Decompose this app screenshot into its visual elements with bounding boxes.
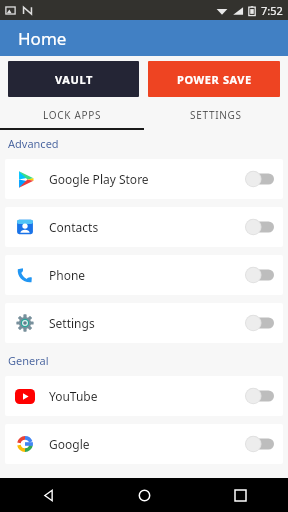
staticText: Settings <box>49 315 244 331</box>
staticText: VAULT <box>55 72 93 87</box>
button[interactable]: Google Play Store <box>5 159 283 199</box>
button[interactable]: Phone <box>5 255 283 295</box>
staticText: General <box>8 353 49 368</box>
staticText: POWER SAVE <box>177 72 252 87</box>
staticText: 7:52 <box>261 3 283 18</box>
staticText: Phone <box>49 267 244 283</box>
staticText: SETTINGS <box>190 108 242 122</box>
button[interactable]: Toggle lock <box>244 218 274 236</box>
button[interactable]: Toggle lock <box>244 170 274 188</box>
button[interactable]: YouTube <box>5 376 283 416</box>
button[interactable]: Contacts <box>5 207 283 247</box>
button[interactable]: Back <box>0 478 96 512</box>
button[interactable]: Toggle lock <box>244 314 274 332</box>
button[interactable]: Toggle lock <box>244 435 274 453</box>
staticText: LOCK APPS <box>43 108 102 122</box>
staticText: Google Play Store <box>49 171 244 187</box>
button[interactable]: VAULT <box>8 61 139 97</box>
staticText: Advanced <box>8 136 59 151</box>
button[interactable]: Google <box>5 424 283 464</box>
button[interactable]: Recent apps <box>192 478 288 512</box>
button[interactable]: Settings <box>5 303 283 343</box>
button[interactable]: LOCK APPS <box>0 102 144 128</box>
staticText: YouTube <box>49 388 244 404</box>
staticText: Home <box>18 27 67 50</box>
staticText: Google <box>49 436 244 452</box>
button[interactable]: Home <box>96 478 192 512</box>
staticText: Contacts <box>49 219 244 235</box>
button[interactable]: Toggle lock <box>244 387 274 405</box>
button[interactable]: SETTINGS <box>144 102 288 128</box>
button[interactable]: POWER SAVE <box>148 61 280 97</box>
button[interactable]: Toggle lock <box>244 266 274 284</box>
